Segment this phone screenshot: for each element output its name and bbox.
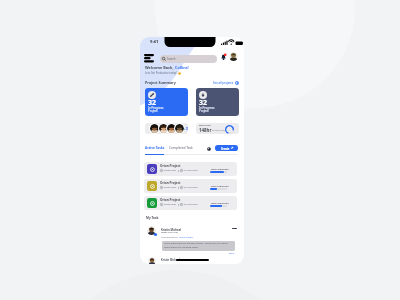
button[interactable]: Orion Project xyxy=(144,179,237,193)
button[interactable]: Menu xyxy=(144,54,154,62)
staticText: 78% xyxy=(225,202,229,205)
button[interactable]: Work Time xyxy=(196,123,239,134)
staticText: Search xyxy=(167,57,176,61)
staticText: Lets Get Productive today! xyxy=(145,71,178,75)
staticText: Work Progress xyxy=(211,168,225,171)
staticText: Kristin Michael xyxy=(161,228,182,232)
staticText: In Progress xyxy=(148,106,164,110)
staticText: My Task xyxy=(146,216,159,220)
button[interactable]: Orion Project xyxy=(144,196,237,210)
staticText: 35 Comments xyxy=(184,186,198,189)
staticText: Project Summary xyxy=(145,80,176,85)
button[interactable]: Active Tasks xyxy=(145,146,165,150)
staticText: Create xyxy=(221,147,230,150)
staticText: That's pretty good for the hero section.… xyxy=(164,242,233,248)
staticText: 45 Comments xyxy=(184,169,198,172)
staticText: Orion Project xyxy=(160,181,181,185)
button[interactable]: +10 xyxy=(145,123,188,134)
staticText: Completed Task xyxy=(169,146,193,150)
staticText: Kristin Michael xyxy=(161,258,180,261)
staticText: Project xyxy=(199,109,209,113)
button[interactable]: See all projects xyxy=(213,81,239,85)
staticText: See all projects xyxy=(213,81,234,85)
staticText: Reply xyxy=(229,252,235,255)
staticText: Active Tasks xyxy=(145,146,165,150)
button[interactable]: Filter xyxy=(206,146,211,151)
staticText: Welcome Back, xyxy=(145,65,175,70)
staticText: Design Brief xyxy=(164,203,177,206)
button[interactable]: 32 xyxy=(196,88,239,116)
staticText: Design Brief xyxy=(164,169,177,172)
button[interactable]: Profile xyxy=(229,52,238,61)
button[interactable]: Completed Task xyxy=(169,146,193,150)
staticText: Orion Project xyxy=(160,198,181,202)
button[interactable]: Search xyxy=(160,55,217,63)
staticText: Project xyxy=(148,109,158,113)
staticText: 38 Comments xyxy=(184,203,198,206)
button[interactable]: More options xyxy=(231,226,237,230)
staticText: 48% xyxy=(225,185,229,188)
staticText: Work Time xyxy=(199,124,211,127)
staticText: this week remaining xyxy=(212,129,228,131)
staticText: 32 xyxy=(148,98,157,108)
staticText: +10 xyxy=(184,127,188,131)
staticText: Commented on xyxy=(161,236,179,239)
button[interactable]: Orion Project xyxy=(144,162,237,176)
staticText: 65% xyxy=(225,168,229,171)
button[interactable]: Notifications xyxy=(220,53,226,61)
staticText: 32 xyxy=(199,98,208,108)
staticText: In Progress xyxy=(199,106,215,110)
staticText: Collins! xyxy=(175,65,189,70)
staticText: Work Progress xyxy=(211,185,225,188)
staticText: Work Progress xyxy=(211,202,225,205)
staticText: 148hr xyxy=(199,127,212,133)
staticText: Design Brief xyxy=(164,186,177,189)
button[interactable]: Reply xyxy=(229,252,235,255)
staticText: 9:41 xyxy=(150,39,159,45)
button[interactable]: 32 xyxy=(145,88,188,116)
staticText: Orion Project xyxy=(179,236,194,239)
button[interactable]: Create xyxy=(215,145,238,151)
staticText: Today 10:14 AM xyxy=(161,231,178,234)
staticText: Orion Project xyxy=(160,164,181,168)
